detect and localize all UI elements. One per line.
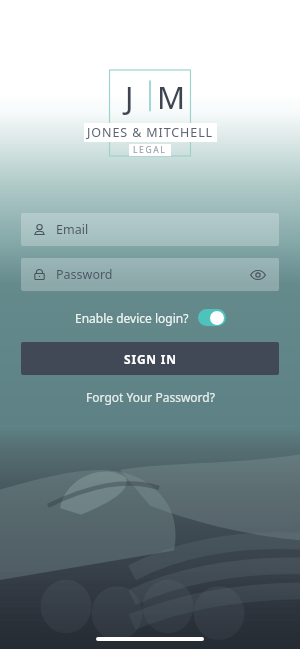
staticText: Enable device login? bbox=[75, 310, 189, 326]
button[interactable]: Forgot Your Password? bbox=[78, 386, 223, 408]
staticText: Password bbox=[56, 266, 113, 283]
button[interactable]: Email bbox=[21, 213, 279, 246]
staticText: JONES & MITCHELL bbox=[87, 124, 214, 141]
staticText: LEGAL bbox=[133, 144, 167, 156]
button[interactable]: SIGN IN bbox=[21, 342, 279, 375]
staticText: SIGN IN bbox=[124, 351, 177, 367]
staticText: Forgot Your Password? bbox=[86, 389, 215, 405]
button[interactable]: Password bbox=[21, 258, 279, 291]
staticText: Email bbox=[56, 221, 89, 238]
staticText: M bbox=[157, 76, 186, 118]
button[interactable]: Show password bbox=[247, 264, 269, 286]
button[interactable]: Enable device login? bbox=[69, 306, 232, 329]
staticText: J bbox=[125, 76, 134, 118]
